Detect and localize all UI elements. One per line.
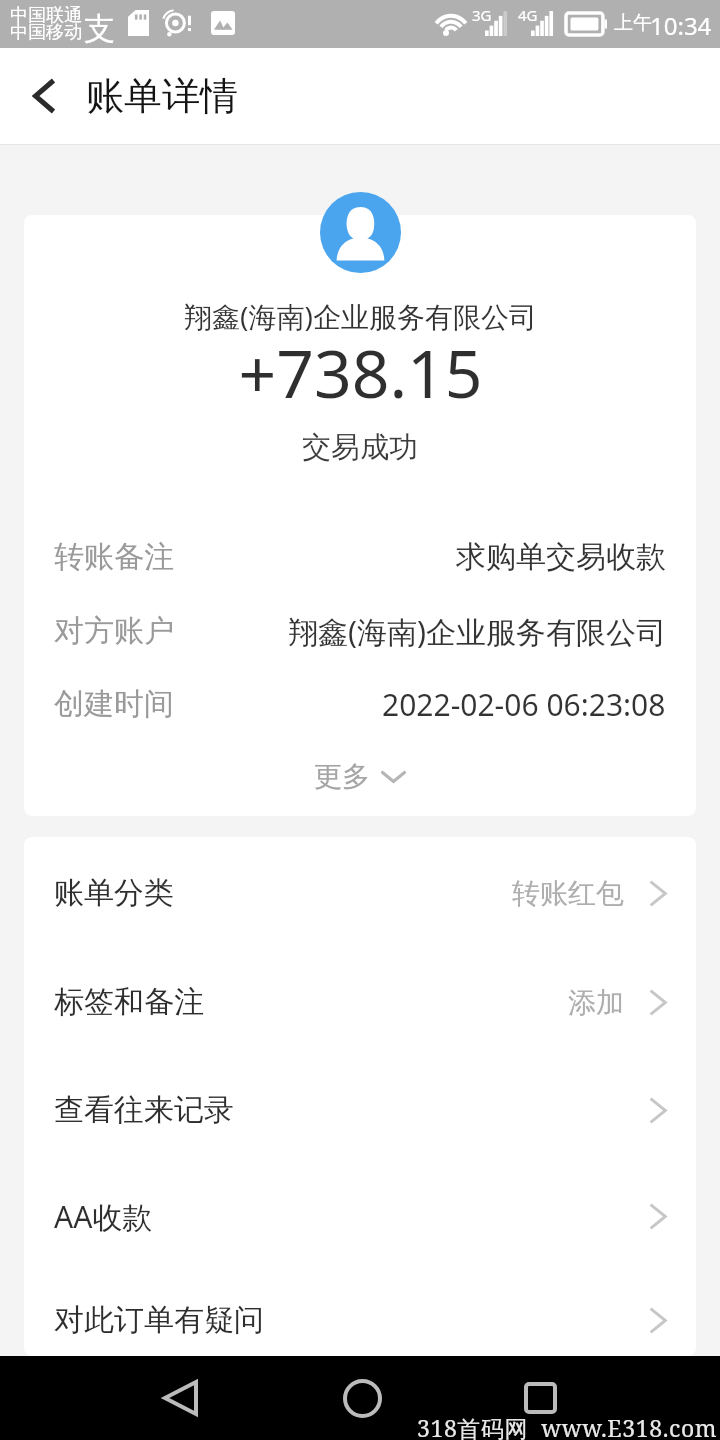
staticText: 10:34	[650, 9, 712, 42]
staticText: 翔鑫(海南)企业服务有限公司	[288, 611, 666, 652]
staticText: 添加	[568, 985, 624, 1020]
staticText: 318首码网 www.E318.com	[417, 1412, 718, 1440]
staticText: 交易成功	[302, 429, 418, 466]
staticText: 2022-02-06 06:23:08	[382, 684, 666, 725]
button[interactable]: 对此订单有疑问	[24, 1267, 696, 1373]
button[interactable]: 账单分类	[24, 840, 696, 946]
staticText: 账单详情	[86, 72, 238, 120]
staticText: 上午	[614, 11, 652, 35]
staticText: 更多	[314, 759, 370, 794]
staticText: 支	[84, 9, 115, 48]
button[interactable]: AA收款	[24, 1163, 696, 1269]
button[interactable]: 更多	[250, 750, 470, 802]
staticText: 中国联通	[10, 4, 82, 27]
staticText: 创建时间	[54, 685, 174, 723]
staticText: 3G	[472, 5, 492, 25]
button[interactable]: Back	[150, 1368, 210, 1428]
button[interactable]: Back	[12, 64, 76, 128]
staticText: 查看往来记录	[54, 1091, 234, 1129]
staticText: 求购单交易收款	[456, 538, 666, 576]
staticText: 标签和备注	[54, 983, 204, 1021]
button[interactable]: 查看往来记录	[24, 1057, 696, 1163]
staticText: 转账备注	[54, 538, 174, 576]
staticText: 4G	[518, 5, 538, 25]
staticText: 对此订单有疑问	[54, 1301, 264, 1339]
staticText: 对方账户	[54, 612, 174, 650]
button[interactable]: Home	[332, 1368, 392, 1428]
staticText: AA收款	[54, 1196, 153, 1237]
staticText: 账单分类	[54, 874, 174, 912]
staticText: 转账红包	[512, 876, 624, 911]
staticText: 中国移动	[10, 21, 82, 44]
staticText: +738.15	[238, 327, 483, 417]
button[interactable]: Recents	[510, 1368, 570, 1428]
staticText: 翔鑫(海南)企业服务有限公司	[184, 297, 537, 335]
button[interactable]: 标签和备注	[24, 949, 696, 1055]
